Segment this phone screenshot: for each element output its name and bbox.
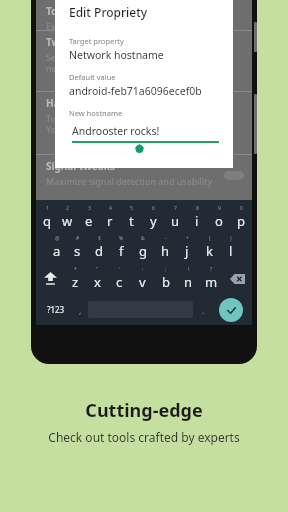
- staticText: ": [96, 266, 99, 273]
- staticText: 6: [152, 205, 155, 212]
- staticText: 1: [46, 205, 49, 212]
- staticText: #: [76, 235, 80, 242]
- staticText: 2: [66, 205, 69, 212]
- staticText: Secondary text here next line of detail: [46, 51, 131, 75]
- staticText: ?: [210, 266, 213, 273]
- staticText: n: [184, 273, 193, 291]
- staticText: android-feb71a6096ecef0b: [69, 84, 202, 98]
- staticText: &: [141, 235, 145, 242]
- button[interactable]: ': [108, 263, 131, 294]
- staticText: Signal tweaks: [46, 159, 115, 173]
- staticText: Androoster rocks!: [72, 124, 160, 138]
- staticText: e: [85, 212, 93, 230]
- button[interactable]: &: [132, 232, 154, 263]
- staticText: %: [119, 235, 124, 242]
- staticText: 3: [88, 205, 91, 212]
- button[interactable]: (: [198, 232, 220, 263]
- button[interactable]: Enter: [219, 298, 243, 322]
- button[interactable]: 2: [57, 202, 78, 232]
- staticText: 8: [196, 205, 199, 212]
- button[interactable]: Shift: [36, 263, 64, 294]
- staticText: 4: [109, 205, 112, 212]
- staticText: k: [206, 242, 213, 260]
- button[interactable]: ,: [72, 294, 88, 325]
- staticText: w: [62, 212, 73, 230]
- staticText: ,: [79, 304, 82, 316]
- button[interactable]: #: [67, 232, 88, 263]
- button[interactable]: -: [154, 232, 176, 263]
- staticText: x: [94, 273, 101, 291]
- staticText: Default value: [69, 72, 116, 82]
- button[interactable]: ;: [154, 263, 177, 294]
- staticText: Check out tools crafted by experts: [48, 429, 240, 445]
- button[interactable]: 6: [142, 202, 164, 232]
- staticText: c: [116, 273, 123, 291]
- button[interactable]: 9: [208, 202, 230, 232]
- button[interactable]: Signal tweaks: [36, 155, 252, 195]
- staticText: Extra description line: [46, 20, 135, 30]
- staticText: s: [74, 242, 81, 260]
- staticText: Tweak options: [46, 35, 119, 49]
- staticText: !: [188, 266, 190, 273]
- staticText: ): [230, 235, 232, 242]
- staticText: y: [150, 212, 157, 230]
- button[interactable]: $: [88, 232, 110, 263]
- button[interactable]: *: [64, 263, 86, 294]
- staticText: .: [202, 304, 205, 316]
- staticText: 5: [130, 205, 133, 212]
- staticText: b: [162, 273, 170, 291]
- button[interactable]: Handy helper: [36, 92, 252, 154]
- button[interactable]: 7: [164, 202, 186, 232]
- button[interactable]: :: [131, 263, 154, 294]
- button[interactable]: 8: [186, 202, 208, 232]
- staticText: m: [205, 273, 218, 291]
- staticText: l: [229, 242, 233, 260]
- staticText: 9: [218, 205, 221, 212]
- staticText: Tune your device Your way, every day: [46, 112, 130, 136]
- button[interactable]: .: [193, 294, 214, 325]
- button[interactable]: @: [46, 232, 67, 263]
- staticText: u: [171, 212, 180, 230]
- button[interactable]: ?123: [40, 294, 72, 325]
- button[interactable]: %: [110, 232, 132, 263]
- staticText: a: [53, 242, 61, 260]
- staticText: o: [215, 212, 223, 230]
- staticText: g: [139, 242, 147, 260]
- staticText: ?123: [47, 304, 65, 315]
- staticText: (: [209, 235, 211, 242]
- staticText: ;: [165, 266, 167, 273]
- staticText: @: [55, 235, 60, 242]
- button[interactable]: +: [176, 232, 198, 263]
- staticText: r: [107, 212, 113, 230]
- button[interactable]: 1: [36, 202, 57, 232]
- button[interactable]: Tool name: [36, 0, 252, 30]
- staticText: p: [237, 212, 245, 230]
- button[interactable]: Tweak options: [36, 31, 252, 91]
- staticText: h: [161, 242, 170, 260]
- staticText: q: [43, 212, 51, 230]
- button[interactable]: 3: [78, 202, 99, 232]
- button[interactable]: ): [220, 232, 242, 263]
- staticText: *: [74, 266, 77, 273]
- button[interactable]: ": [86, 263, 108, 294]
- staticText: Network hostname: [69, 48, 164, 62]
- button[interactable]: 5: [120, 202, 142, 232]
- staticText: Cutting-edge: [85, 398, 203, 423]
- button[interactable]: ?: [200, 263, 223, 294]
- staticText: 0: [240, 205, 243, 212]
- staticText: Tool name: [46, 4, 98, 18]
- staticText: ': [119, 266, 121, 273]
- staticText: f: [119, 242, 124, 260]
- staticText: +: [186, 235, 189, 242]
- button[interactable]: !: [177, 263, 200, 294]
- button[interactable]: 0: [230, 202, 252, 232]
- staticText: -: [165, 235, 167, 242]
- button[interactable]: Backspace: [223, 263, 252, 294]
- staticText: v: [139, 273, 146, 291]
- staticText: d: [95, 242, 103, 260]
- staticText: t: [129, 212, 134, 230]
- button[interactable]: 4: [99, 202, 120, 232]
